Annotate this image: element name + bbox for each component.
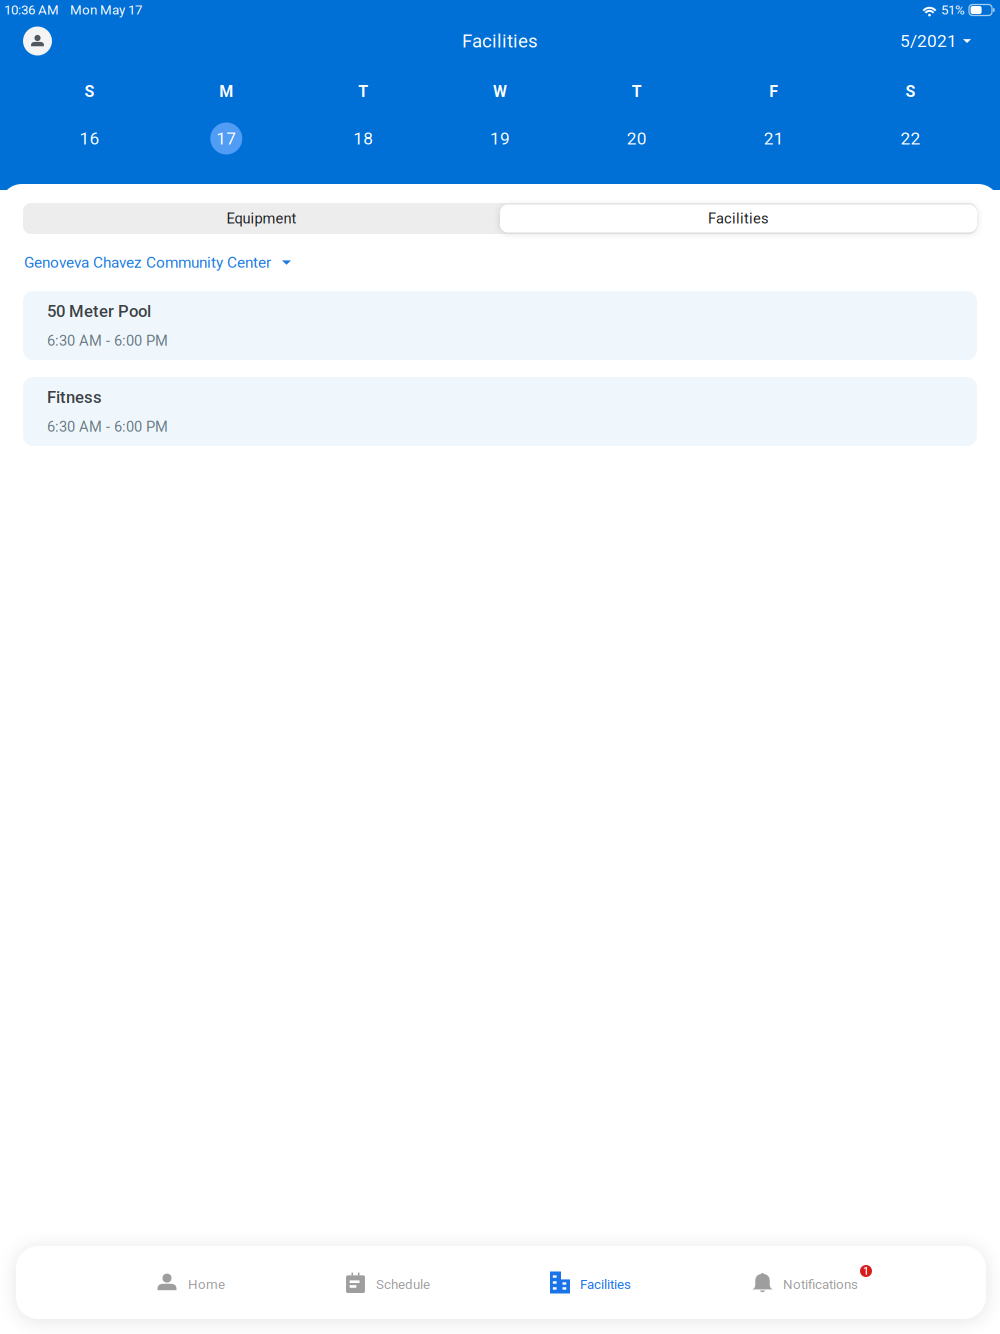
staticText: 50 Meter Pool [47, 302, 151, 321]
button[interactable]: Schedule [345, 1246, 430, 1319]
button[interactable]: 5/2021 [900, 20, 971, 62]
staticText: 19 [490, 128, 510, 149]
staticText: 21 [764, 128, 784, 149]
button[interactable]: S [21, 77, 158, 158]
staticText: S [906, 82, 916, 101]
button[interactable]: S [842, 77, 979, 158]
staticText: Equipment [226, 210, 296, 227]
staticText: F [769, 82, 778, 101]
staticText: Fitness [47, 388, 102, 407]
button[interactable]: M [158, 77, 295, 158]
staticText: 6:30 AM - 6:00 PM [47, 418, 168, 435]
staticText: 5/2021 [900, 31, 957, 51]
staticText: 17 [216, 128, 236, 149]
button[interactable]: Notifications [751, 1246, 858, 1319]
button[interactable]: Fitness [23, 377, 977, 446]
staticText: W [493, 82, 507, 101]
staticText: Schedule [376, 1277, 430, 1292]
staticText: 18 [353, 128, 373, 149]
staticText: Facilities [462, 30, 538, 52]
staticText: 51% [941, 2, 965, 18]
staticText: Facilities [580, 1277, 631, 1292]
staticText: 20 [627, 128, 647, 149]
button[interactable]: Genoveva Chavez Community Center [0, 234, 1000, 291]
staticText: 16 [79, 128, 99, 149]
button[interactable]: T [295, 77, 432, 158]
button[interactable]: F [705, 77, 842, 158]
staticText: T [358, 82, 368, 101]
staticText: Genoveva Chavez Community Center [24, 253, 271, 271]
button[interactable]: Equipment [23, 203, 500, 234]
button[interactable]: 50 Meter Pool [23, 291, 977, 360]
staticText: Facilities [708, 210, 769, 227]
button[interactable]: T [568, 77, 705, 158]
staticText: 10:36 AM [4, 2, 59, 18]
staticText: Mon May 17 [70, 2, 142, 18]
button[interactable]: Facilities [500, 204, 977, 232]
button[interactable]: Home [156, 1246, 225, 1319]
staticText: 6:30 AM - 6:00 PM [47, 332, 168, 349]
button[interactable]: Facilities [549, 1246, 631, 1319]
staticText: 1 [863, 1265, 869, 1277]
staticText: Home [188, 1277, 225, 1292]
staticText: M [219, 82, 233, 101]
staticText: 22 [901, 128, 921, 149]
staticText: S [84, 82, 94, 101]
staticText: Notifications [783, 1277, 858, 1292]
button[interactable]: Profile [16, 20, 59, 62]
button[interactable]: W [432, 77, 568, 158]
staticText: T [632, 82, 642, 101]
